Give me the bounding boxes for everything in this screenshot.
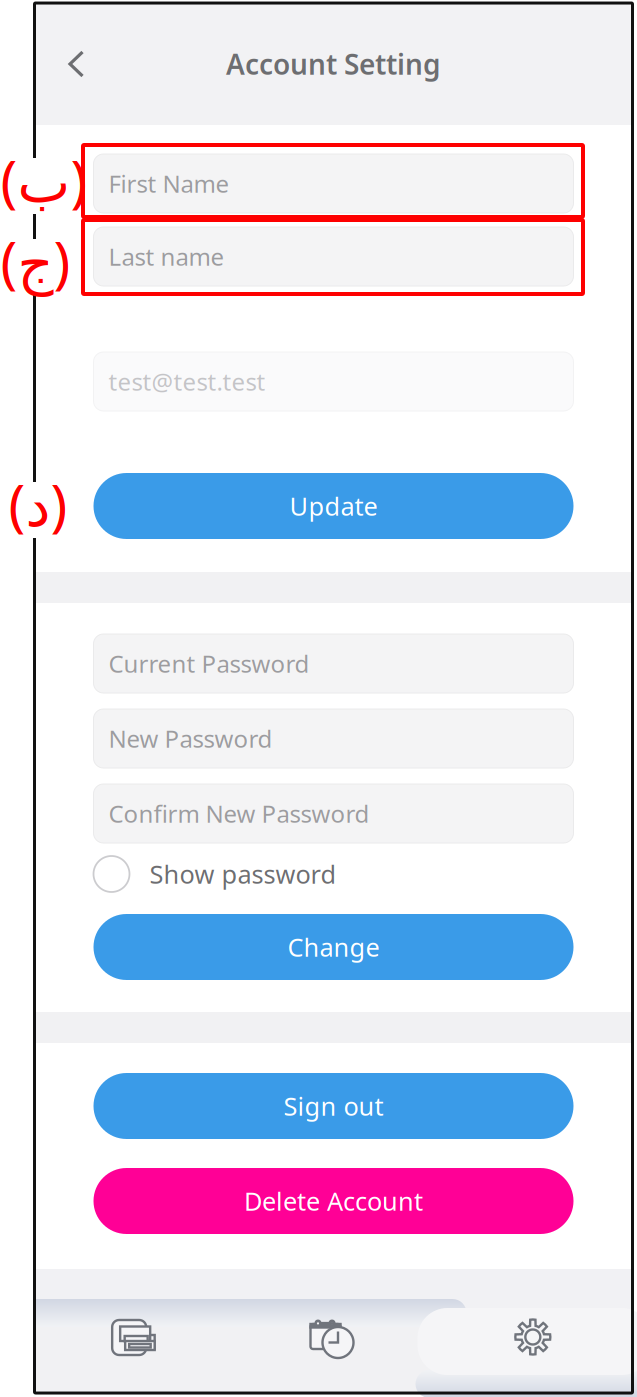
staticText: Account Setting bbox=[226, 45, 441, 83]
staticText: Show password bbox=[149, 857, 336, 891]
staticText: Current Password bbox=[108, 648, 309, 679]
button[interactable]: Documents bbox=[34, 1318, 234, 1358]
button[interactable]: Update bbox=[93, 473, 573, 539]
staticText: test@test.test bbox=[108, 366, 265, 397]
staticText: Delete Account bbox=[244, 1184, 423, 1218]
button[interactable]: Delete Account bbox=[93, 1168, 573, 1234]
staticText: Last name bbox=[108, 241, 224, 272]
staticText: Confirm New Password bbox=[108, 798, 369, 829]
staticText: (د) bbox=[8, 467, 67, 541]
staticText: Update bbox=[289, 489, 377, 523]
button[interactable]: Change bbox=[93, 914, 573, 980]
staticText: Sign out bbox=[283, 1089, 383, 1123]
button[interactable]: Schedule bbox=[234, 1318, 433, 1358]
button[interactable]: Settings bbox=[433, 1318, 632, 1358]
staticText: Change bbox=[287, 930, 379, 964]
button[interactable]: Sign out bbox=[93, 1073, 573, 1139]
button[interactable]: Back bbox=[48, 36, 104, 92]
staticText: (ج) bbox=[0, 224, 70, 298]
staticText: First Name bbox=[108, 168, 229, 199]
staticText: (ب) bbox=[0, 143, 87, 217]
button[interactable]: Show password bbox=[93, 856, 573, 892]
staticText: New Password bbox=[108, 723, 272, 754]
